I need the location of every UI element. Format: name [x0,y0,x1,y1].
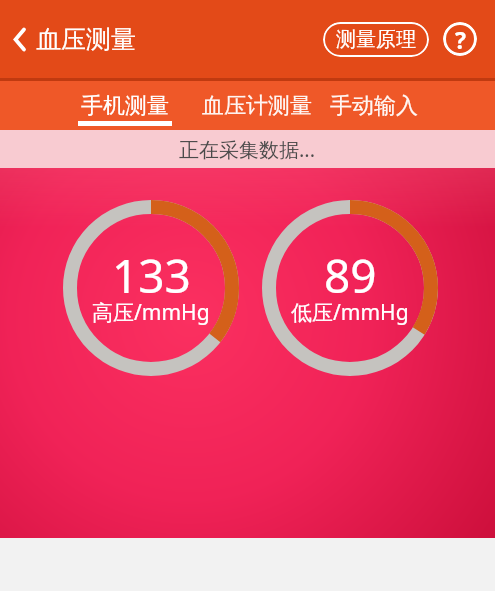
button[interactable]: 手动输入 [328,81,420,130]
button[interactable]: ? [443,22,477,56]
staticText: 测量原理 [336,27,416,52]
staticText: 低压/mmHg [291,298,409,327]
staticText: 高压/mmHg [92,298,210,327]
staticText: 133 [112,244,191,307]
staticText: ? [455,24,466,55]
button[interactable]: 血压测量 [12,24,136,55]
staticText: 正在采集数据... [179,136,316,163]
button[interactable]: 手机测量 [78,81,172,130]
staticText: 手动输入 [330,92,418,120]
staticText: 血压测量 [36,24,136,55]
staticText: 手机测量 [81,92,169,120]
staticText: 血压计测量 [202,92,312,120]
button[interactable]: 血压计测量 [200,81,314,130]
button[interactable]: 测量原理 [323,22,429,57]
staticText: 89 [324,244,377,307]
